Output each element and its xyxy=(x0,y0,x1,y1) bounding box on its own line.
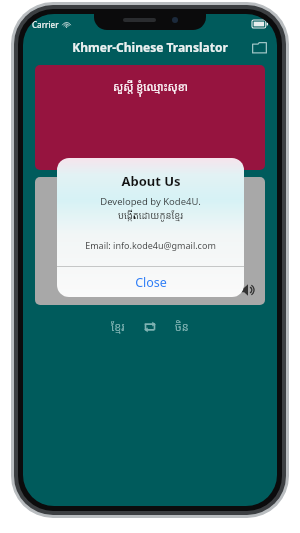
button[interactable]: Close xyxy=(57,267,244,297)
button[interactable]: Saved translations xyxy=(249,37,269,57)
staticText: បង្កើតដោយកូនខ្មែរ xyxy=(118,209,183,222)
staticText: Developed by Kode4U. xyxy=(100,195,201,208)
button[interactable]: Speak xyxy=(35,177,265,305)
staticText: Email: info.kode4u@gmail.com xyxy=(85,239,216,251)
staticText: About Us xyxy=(121,172,181,190)
staticText: Close xyxy=(135,274,167,291)
staticText: Carrier xyxy=(32,19,59,30)
staticText: ចិន xyxy=(175,319,189,334)
staticText: សួស្ដី ខ្ញុំឈ្មោះសុខា xyxy=(113,79,188,94)
button[interactable]: Swap languages xyxy=(140,317,160,337)
button[interactable]: សួស្ដី ខ្ញុំឈ្មោះសុខា xyxy=(35,65,265,170)
button[interactable]: Speak xyxy=(237,279,259,301)
staticText: ខ្មែរ xyxy=(111,319,125,334)
staticText: Khmer-Chinese Translator xyxy=(72,39,228,55)
button[interactable]: ចិន xyxy=(170,316,194,337)
button[interactable]: ខ្មែរ xyxy=(106,316,130,337)
